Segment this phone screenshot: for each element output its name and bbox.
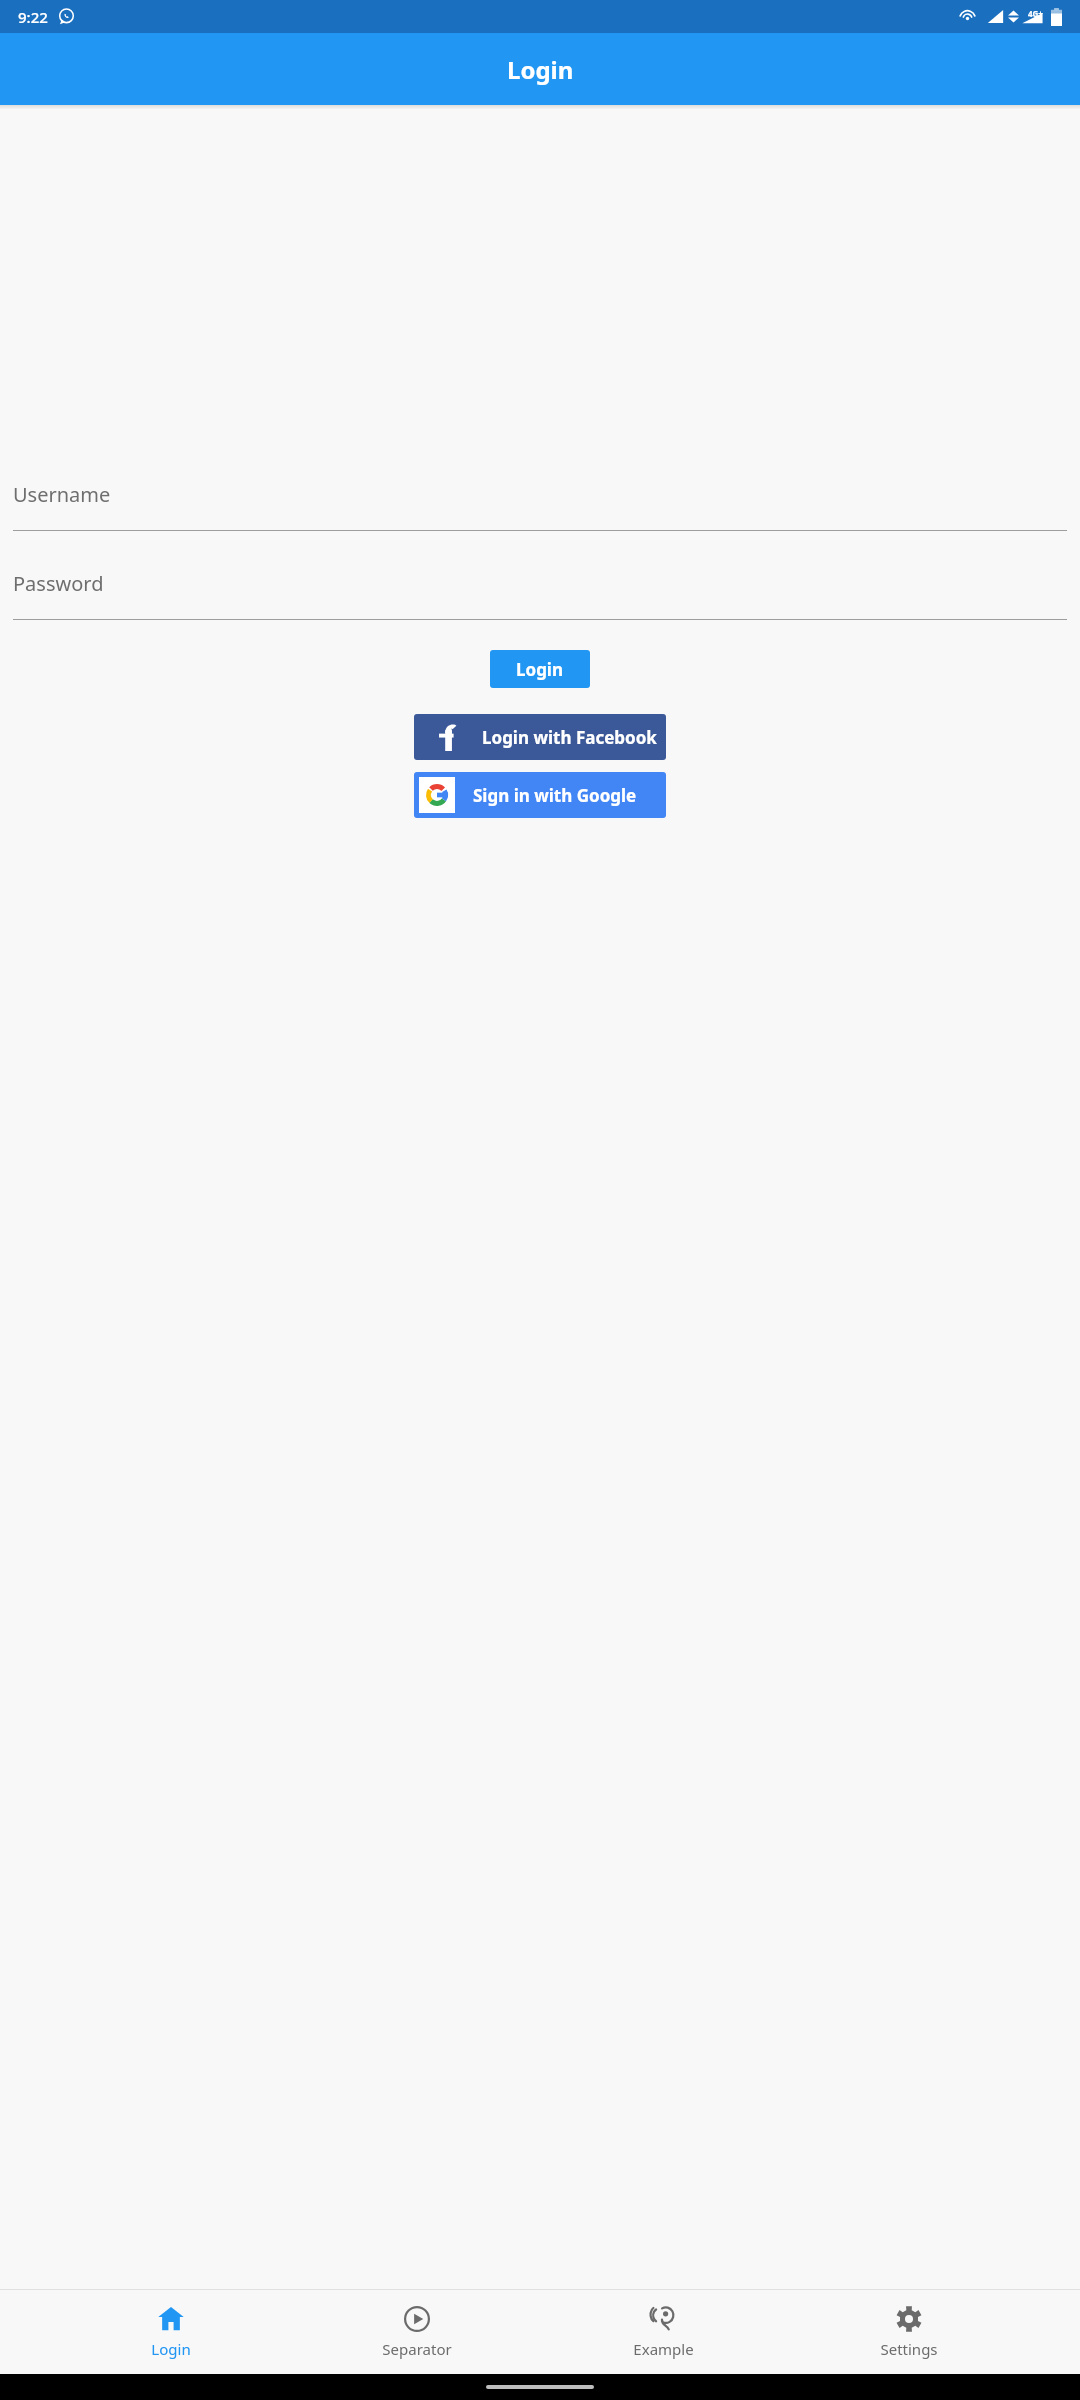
staticText: Login: [151, 2339, 191, 2359]
button[interactable]: Separator: [342, 2300, 492, 2365]
button[interactable]: Settings: [834, 2300, 984, 2365]
staticText: Separator: [382, 2339, 452, 2359]
staticText: Login: [516, 658, 564, 681]
staticText: 4G+: [1028, 8, 1043, 19]
button[interactable]: Example: [588, 2300, 738, 2365]
staticText: Username: [13, 481, 111, 508]
button[interactable]: Login: [490, 650, 590, 688]
staticText: Password: [13, 570, 104, 597]
staticText: Sign in with Google: [473, 784, 637, 807]
other: Settings: [896, 2306, 922, 2332]
staticText: 9:22: [18, 7, 48, 27]
staticText: Example: [633, 2339, 694, 2359]
other: WhatsApp: [58, 8, 75, 25]
staticText: Settings: [880, 2339, 938, 2359]
other: Login: [158, 2306, 184, 2332]
button[interactable]: Login with Facebook: [414, 714, 666, 760]
staticText: Login with Facebook: [482, 726, 657, 749]
button[interactable]: Sign in with Google: [414, 772, 666, 818]
other: Example: [650, 2306, 676, 2332]
button[interactable]: Login: [96, 2300, 246, 2365]
staticText: Login: [507, 53, 574, 86]
other: Separator: [404, 2306, 430, 2332]
